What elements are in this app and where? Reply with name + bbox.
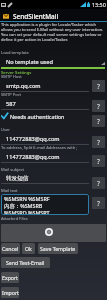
staticText: 114772883@qq.com <box>6 135 60 143</box>
staticText: ? <box>97 179 100 188</box>
button[interactable]: Add attachment <box>45 228 53 236</box>
staticText: ? <box>97 138 100 147</box>
staticText: %SMSRN %SMSRF <box>4 195 50 202</box>
button[interactable]: Ok <box>22 243 35 254</box>
staticText: ? <box>97 82 100 91</box>
staticText: smtp.qq.com <box>6 82 41 90</box>
staticText: SendSilentMail <box>13 12 59 21</box>
button[interactable]: Help <box>92 100 105 112</box>
button[interactable]: User <box>1 127 89 145</box>
staticText: %SMSRD %SMSRT <box>4 209 50 214</box>
button[interactable]: Load template <box>1 50 105 69</box>
button[interactable]: Help <box>92 155 105 167</box>
staticText: No template used <box>6 58 101 66</box>
button[interactable]: SMTP Port <box>1 92 89 110</box>
staticText: User <box>1 127 10 133</box>
staticText: ? <box>97 157 100 166</box>
staticText: 587 <box>6 100 16 108</box>
staticText: Cancel <box>2 245 19 252</box>
staticText: SMTP Port <box>1 92 21 98</box>
staticText: 转发短信 <box>6 175 29 182</box>
staticText: ? <box>97 117 100 126</box>
staticText: Load template <box>1 50 29 56</box>
button[interactable]: Save Template <box>38 243 78 254</box>
button[interactable]: %SMSRN %SMSRF <box>1 194 89 215</box>
button[interactable]: Mail subject <box>1 167 89 184</box>
staticText: Attached Files <box>1 216 28 222</box>
button[interactable]: Help <box>92 136 105 148</box>
staticText: Import <box>2 289 19 296</box>
button[interactable]: Help <box>92 80 105 92</box>
staticText: 内容：%SMSRB <box>4 202 43 209</box>
button[interactable]: SMTP Host <box>1 74 89 92</box>
staticText: To address, Split E-mail Addresses with … <box>1 145 78 151</box>
button[interactable]: Import <box>1 287 19 298</box>
button[interactable]: Send Test-Email <box>1 257 50 268</box>
button[interactable]: To address, Split E-mail Addresses with … <box>1 145 89 163</box>
button[interactable]: Needs authentication <box>1 112 65 120</box>
staticText: Mail subject <box>1 167 25 173</box>
button[interactable]: Cancel <box>1 243 20 254</box>
button[interactable]: Export <box>1 272 19 283</box>
staticText: This application is a plugin for Locale/… <box>1 22 106 42</box>
staticText: Server Settings <box>1 69 32 75</box>
button[interactable]: Help <box>92 115 105 127</box>
staticText: SMTP Host <box>1 74 22 80</box>
staticText: Save Template <box>40 245 76 252</box>
staticText: 13:50 <box>92 1 106 8</box>
staticText: ? <box>97 102 100 111</box>
staticText: 114772883@qq.com <box>6 153 60 161</box>
staticText: Send Test-Email <box>6 259 45 266</box>
staticText: Mail text <box>1 188 18 194</box>
staticText: Export <box>2 274 18 281</box>
staticText: Ok <box>25 245 32 252</box>
button[interactable]: Help <box>92 177 105 189</box>
button[interactable]: Help <box>92 197 105 209</box>
staticText: Needs authentication <box>10 113 65 120</box>
staticText: ? <box>97 199 100 208</box>
